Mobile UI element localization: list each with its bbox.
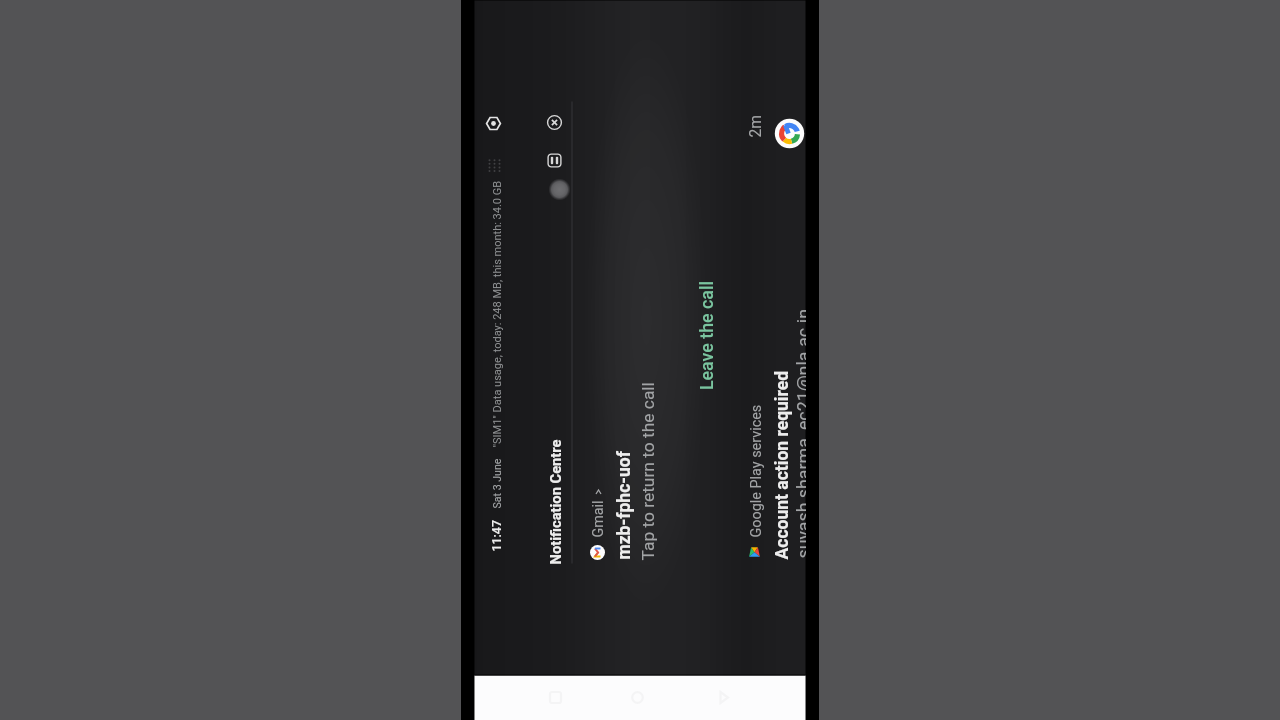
staticText: suyash sharma_ec21@nla.ac.in (792, 308, 806, 558)
staticText: Account action required (771, 370, 792, 559)
button[interactable]: Settings (483, 113, 503, 133)
button[interactable]: Notification history (546, 152, 562, 168)
button[interactable]: Leave the call (685, 260, 725, 410)
staticText: Leave the call (695, 280, 716, 390)
button[interactable]: Clear all notifications (545, 113, 563, 131)
button[interactable]: Status bar (479, 101, 519, 563)
staticText: mzb-fphc-uof (613, 450, 634, 559)
button[interactable]: Gmail ongoing call notification (574, 101, 729, 563)
staticText: Google Play services (747, 404, 764, 537)
button[interactable]: Notification Centre header (534, 101, 572, 563)
staticText: Tap to return to the call (637, 381, 657, 560)
staticText: Gmail (589, 499, 606, 537)
staticText: "SIM1" Data usage, today: 248 MB, this m… (490, 180, 503, 447)
button[interactable]: Google Play services notification (733, 101, 805, 563)
staticText: Sat 3 June (490, 458, 502, 508)
staticText: 11:47 (488, 519, 503, 551)
staticText: Notification Centre (546, 439, 563, 564)
staticText: 2m (746, 114, 764, 137)
